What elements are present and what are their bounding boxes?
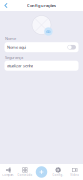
button[interactable]: Config. bbox=[50, 164, 66, 180]
staticText: Nome bbox=[5, 36, 16, 41]
staticText: atualizar senha bbox=[7, 63, 33, 68]
staticText: Compart. bbox=[2, 173, 14, 177]
button[interactable]: Vídeo bbox=[66, 164, 83, 180]
staticText: Segurança bbox=[5, 55, 23, 60]
staticText: Nome aqui bbox=[7, 45, 26, 50]
button[interactable]: Add bbox=[36, 166, 47, 178]
button[interactable]: Compart. bbox=[0, 164, 17, 180]
button[interactable]: atualizar senha bbox=[4, 61, 78, 71]
staticText: Configurações bbox=[27, 3, 56, 8]
button[interactable]: Back bbox=[0, 0, 12, 11]
staticText: Config. bbox=[53, 173, 64, 177]
staticText: Conteúdo bbox=[17, 173, 32, 177]
staticText: Vídeo bbox=[70, 173, 79, 177]
button[interactable]: Nome aqui bbox=[4, 42, 78, 52]
button[interactable]: Conteúdo bbox=[17, 164, 33, 180]
button[interactable]: Change photo bbox=[44, 27, 53, 36]
